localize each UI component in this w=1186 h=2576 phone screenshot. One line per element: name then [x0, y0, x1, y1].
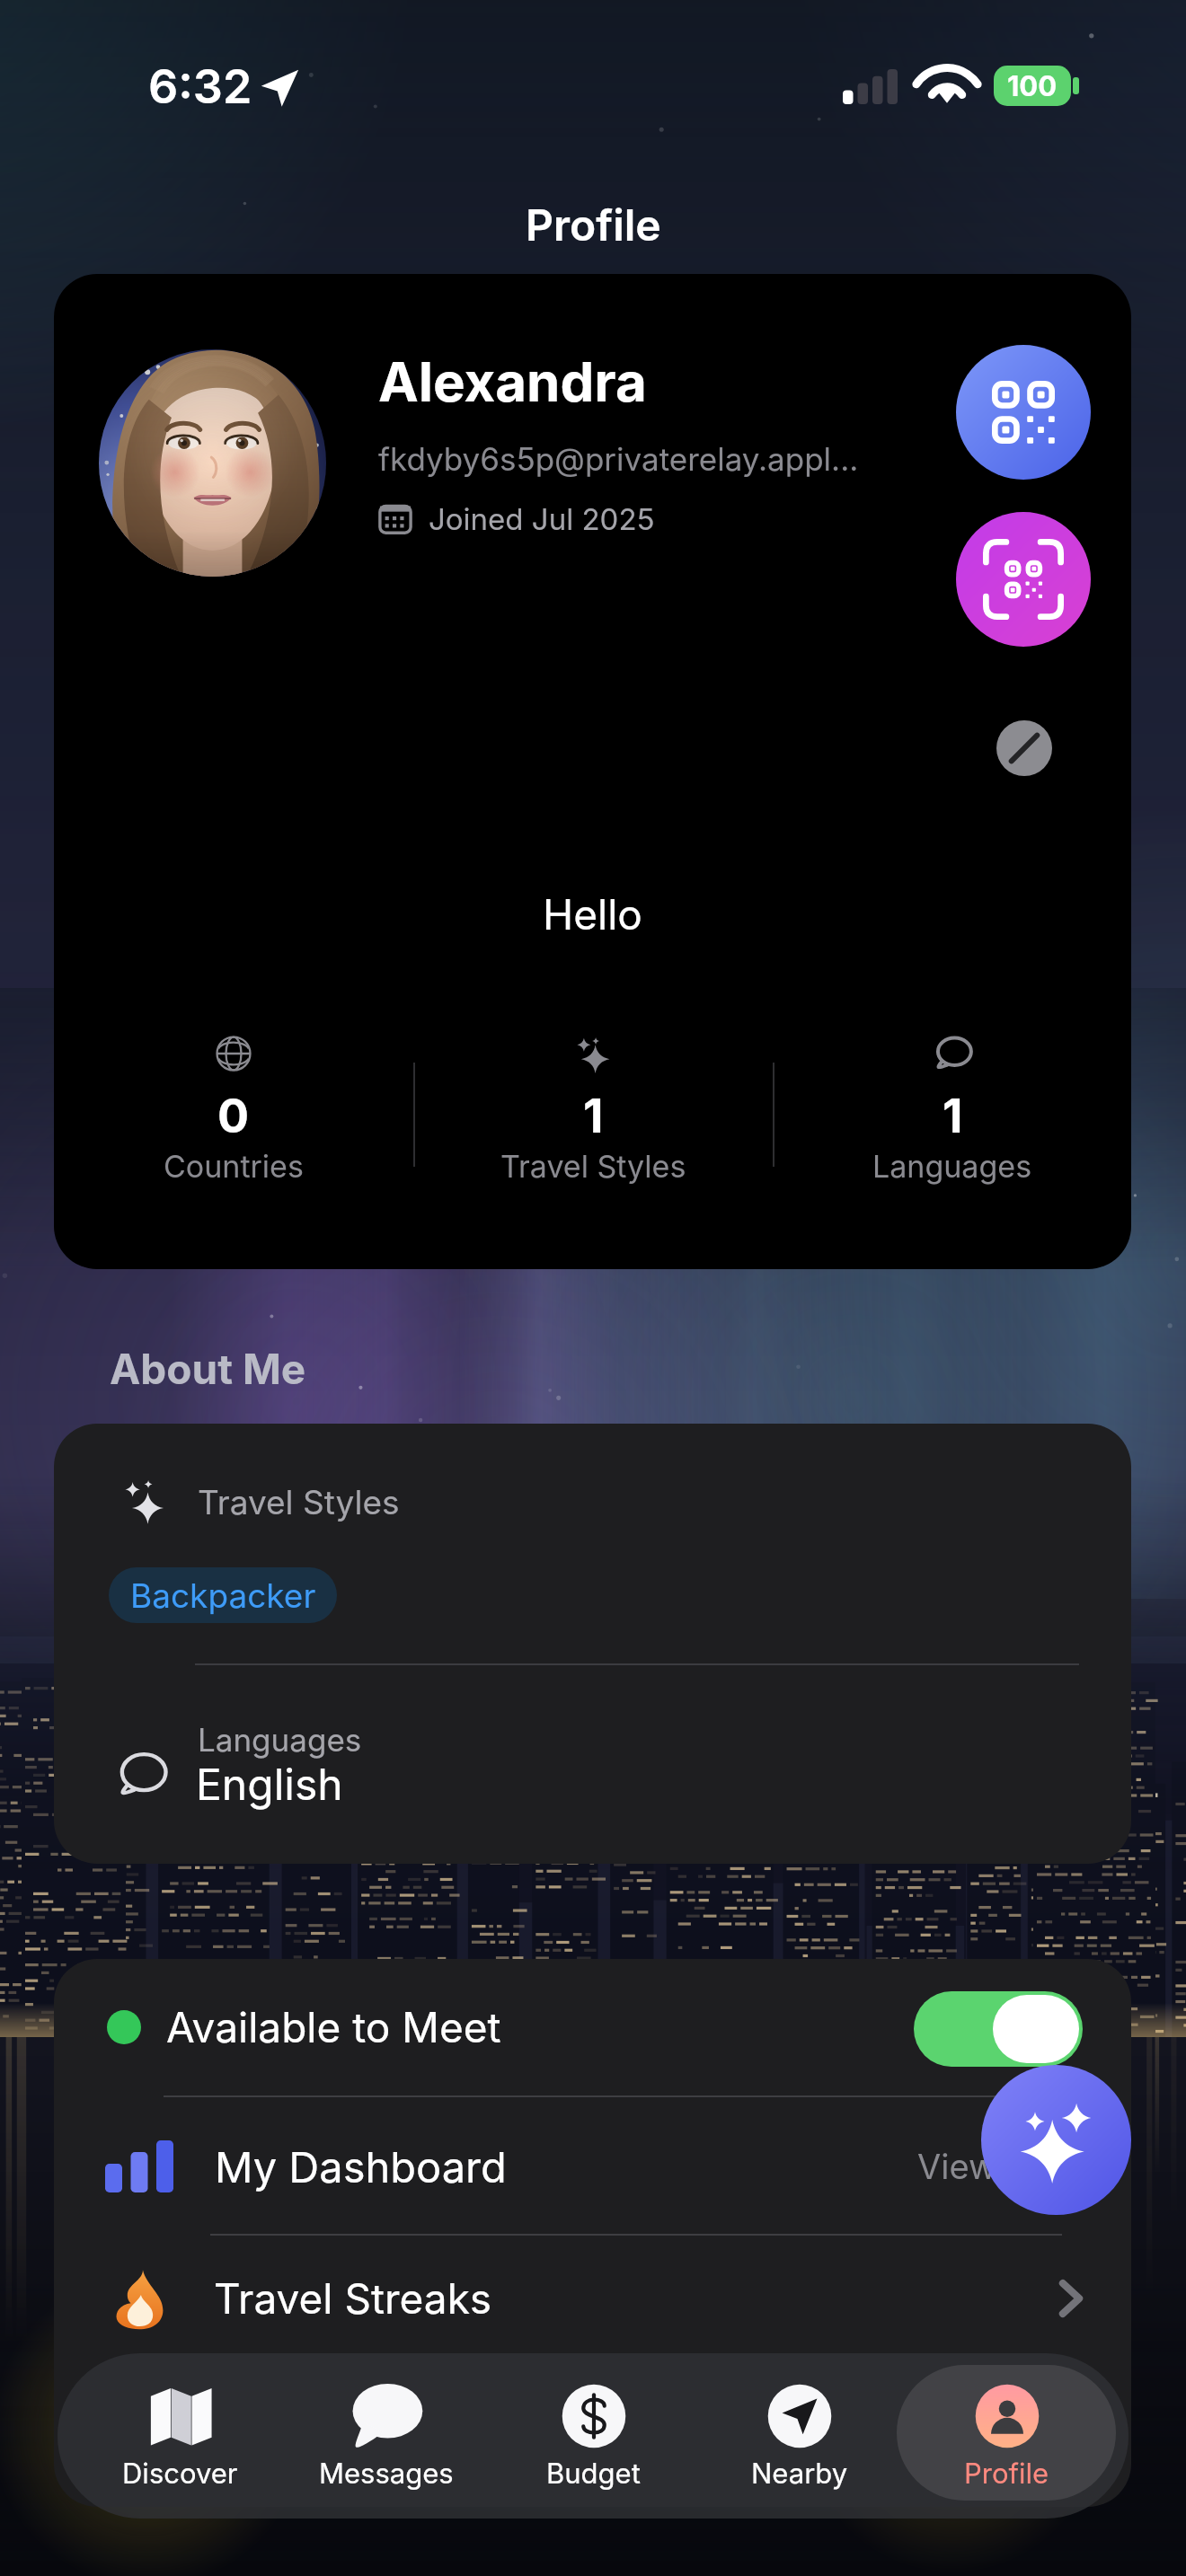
- button[interactable]: Available to Meet toggle: [914, 1991, 1083, 2067]
- button[interactable]: 0: [85, 1034, 382, 1185]
- staticText: Countries: [164, 1148, 304, 1185]
- staticText: Profile: [526, 198, 661, 251]
- staticText: Travel Styles: [198, 1482, 400, 1522]
- staticText: 100: [1007, 69, 1058, 103]
- staticText: Travel Styles: [500, 1148, 686, 1185]
- staticText: Messages: [319, 2457, 454, 2491]
- staticText: 0: [217, 1088, 250, 1144]
- staticText: Hello: [543, 889, 642, 940]
- staticText: Languages: [198, 1721, 362, 1759]
- staticText: Languages: [872, 1148, 1032, 1185]
- staticText: English: [196, 1758, 343, 1810]
- staticText: 6:32: [148, 58, 252, 115]
- staticText: Nearby: [751, 2457, 848, 2491]
- button[interactable]: Backpacker: [109, 1567, 337, 1623]
- button[interactable]: 1: [445, 1034, 741, 1185]
- button[interactable]: Scan a QR code: [956, 512, 1091, 647]
- button[interactable]: Available to Meet: [54, 1964, 1131, 2090]
- button[interactable]: Nearby: [690, 2365, 909, 2501]
- button[interactable]: 1: [804, 1034, 1101, 1185]
- button[interactable]: Messages: [277, 2365, 496, 2501]
- button[interactable]: Edit profile: [996, 720, 1052, 776]
- button[interactable]: Show my QR code: [956, 345, 1091, 480]
- staticText: My Dashboard: [215, 2141, 507, 2192]
- staticText: Discover: [122, 2457, 238, 2491]
- staticText: Alexandra: [378, 349, 647, 415]
- staticText: Available to Meet: [166, 2002, 501, 2052]
- button[interactable]: Profile: [897, 2365, 1116, 2501]
- staticText: View Stats: [917, 2146, 1088, 2187]
- staticText: Backpacker: [130, 1575, 316, 1616]
- button[interactable]: Budget: [483, 2365, 703, 2501]
- staticText: 1: [583, 1088, 604, 1144]
- staticText: 1: [943, 1088, 963, 1144]
- button[interactable]: AI Assistant: [981, 2065, 1131, 2215]
- staticText: Profile: [964, 2457, 1049, 2491]
- staticText: About Me: [110, 1344, 306, 1394]
- button[interactable]: Travel Streaks: [54, 2236, 1131, 2361]
- staticText: Travel Streaks: [214, 2273, 492, 2324]
- staticText: Budget: [546, 2457, 641, 2491]
- staticText: Joined Jul 2025: [429, 501, 655, 537]
- button[interactable]: Discover: [70, 2365, 289, 2501]
- staticText: fkdyby6s5p@privaterelay.appl...: [378, 440, 859, 478]
- button[interactable]: My Dashboard: [54, 2104, 1131, 2229]
